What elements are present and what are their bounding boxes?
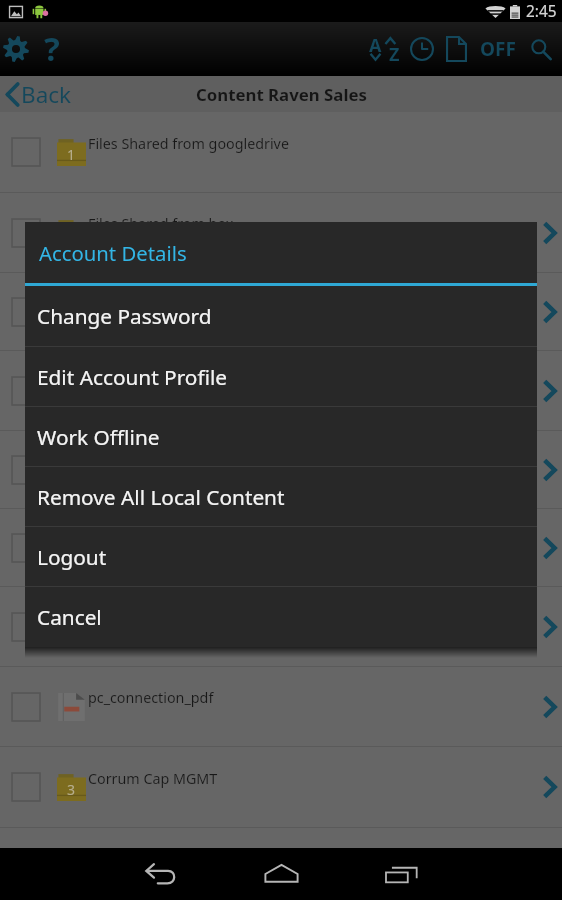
staticText: A xyxy=(369,33,382,58)
button[interactable]: 3 xyxy=(0,747,562,828)
staticText: Quarterly Report xyxy=(88,846,202,865)
button[interactable]: Documents xyxy=(439,22,473,76)
staticText: Files Shared from googledrive xyxy=(88,134,289,153)
button[interactable]: Back xyxy=(119,848,203,900)
staticText: Customer Documents xyxy=(88,608,235,627)
staticText: pc_connection_pdf xyxy=(88,688,214,707)
button[interactable]: Remove All Local Content xyxy=(25,467,537,526)
staticText: Cancel xyxy=(37,603,102,631)
button[interactable]: Recent xyxy=(405,22,439,76)
button[interactable]: Logout xyxy=(25,527,537,586)
staticText: OFF xyxy=(480,36,516,62)
staticText: Change Password xyxy=(37,302,212,330)
staticText: Content Raven Sales Map xyxy=(88,293,259,312)
staticText: Content Raven Sales xyxy=(196,83,367,106)
button[interactable]: pc_connection_pdf xyxy=(0,667,562,747)
button[interactable]: Edit Account Profile xyxy=(25,347,537,406)
button[interactable]: Offline mode off xyxy=(473,22,523,76)
button[interactable]: Home xyxy=(239,848,323,900)
button[interactable]: Customer Documents xyxy=(0,587,562,667)
button[interactable]: Quarterly Report xyxy=(0,828,562,900)
staticText: Marketing Collateral xyxy=(88,451,225,470)
button[interactable]: Marketing Collateral xyxy=(0,431,562,509)
staticText: 3 xyxy=(67,780,76,799)
button[interactable]: Cancel xyxy=(25,587,537,647)
staticText: Edit Account Profile xyxy=(37,363,228,391)
button[interactable]: Content Raven Sales Map xyxy=(0,273,562,351)
button[interactable]: Work Offline xyxy=(25,407,537,466)
button[interactable]: Change Password xyxy=(25,286,537,346)
button[interactable]: 2 xyxy=(0,193,562,273)
button[interactable]: Settings xyxy=(0,22,32,76)
staticText: Z xyxy=(389,42,400,67)
staticText: Corrum Cap MGMT xyxy=(88,769,218,788)
button[interactable]: Sales Presentations xyxy=(0,509,562,587)
staticText: 1 xyxy=(67,145,76,164)
button[interactable]: Search xyxy=(523,22,559,76)
staticText: ? xyxy=(44,26,60,71)
staticText: 2:45 xyxy=(526,1,557,22)
button[interactable]: Sort alphabetically xyxy=(363,22,405,76)
button[interactable]: 1 xyxy=(0,112,562,193)
staticText: Back xyxy=(21,79,72,110)
button[interactable]: Help xyxy=(32,22,72,76)
staticText: Logout xyxy=(37,543,107,571)
button[interactable]: Demo Videos xyxy=(0,351,562,431)
button[interactable]: Recent apps xyxy=(359,848,443,900)
staticText: Work Offline xyxy=(37,423,160,451)
staticText: Demo Videos xyxy=(88,372,177,391)
staticText: Remove All Local Content xyxy=(37,483,285,511)
button[interactable]: Back xyxy=(0,76,82,112)
staticText: Account Details xyxy=(39,239,187,267)
staticText: Files Shared from box xyxy=(88,214,234,233)
